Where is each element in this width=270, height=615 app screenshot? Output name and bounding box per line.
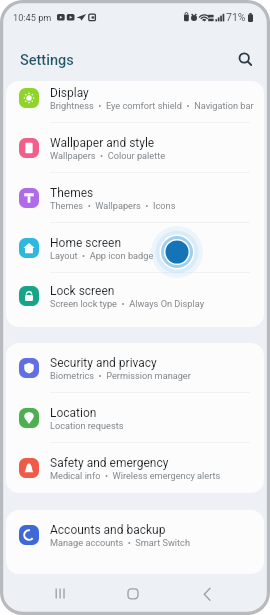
staticText: Manage accounts • Smart Switch — [50, 537, 190, 548]
button[interactable]: Accounts and backup — [6, 510, 264, 560]
staticText: Wallpaper and style — [50, 136, 155, 150]
staticText: Location — [50, 406, 97, 420]
staticText: Biometrics • Permission manager — [50, 370, 191, 381]
button[interactable]: Location — [6, 393, 264, 443]
staticText: Screen lock type • Always On Display — [50, 298, 204, 309]
staticText: Home screen — [50, 236, 122, 250]
button[interactable]: Lock screen — [6, 273, 264, 319]
staticText: Themes — [50, 186, 94, 200]
staticText: Medical info • Wireless emergency alerts — [50, 470, 221, 481]
button[interactable]: Home — [111, 571, 155, 612]
staticText: Accounts and backup — [50, 523, 166, 537]
staticText: Layout • App icon badge — [50, 250, 154, 261]
staticText: 10:45 pm — [13, 12, 52, 23]
button[interactable]: Safety and emergency — [6, 443, 264, 493]
staticText: Display — [50, 86, 89, 100]
staticText: Brightness • Eye comfort shield • Naviga… — [50, 100, 254, 111]
staticText: Themes • Wallpapers • Icons — [50, 200, 176, 211]
staticText: Wallpapers • Colour palette — [50, 150, 166, 161]
button[interactable]: Themes — [6, 173, 264, 223]
button[interactable]: Display — [6, 81, 264, 123]
button[interactable]: Wallpaper and style — [6, 123, 264, 173]
button[interactable]: Recent apps — [38, 571, 82, 612]
button[interactable]: Back — [185, 571, 229, 612]
staticText: Lock screen — [50, 284, 115, 298]
staticText: Safety and emergency — [50, 456, 169, 470]
button[interactable]: Search — [233, 47, 259, 73]
staticText: Settings — [20, 52, 74, 69]
staticText: Security and privacy — [50, 356, 157, 370]
button[interactable]: Security and privacy — [6, 343, 264, 393]
staticText: Location requests — [50, 420, 124, 431]
button[interactable]: Home screen — [6, 223, 264, 273]
staticText: 71% — [226, 11, 246, 23]
